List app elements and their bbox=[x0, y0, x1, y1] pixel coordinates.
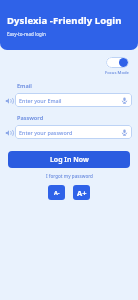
button[interactable]: Voice input for Email bbox=[120, 96, 128, 104]
button[interactable]: Read Password aloud bbox=[3, 127, 14, 138]
button[interactable]: I forgot my password bbox=[0, 173, 138, 179]
staticText: I forgot my password bbox=[46, 173, 93, 179]
button[interactable]: Decrease text size bbox=[48, 185, 65, 200]
button[interactable]: Enter your password bbox=[15, 125, 132, 139]
staticText: Email bbox=[17, 82, 32, 90]
staticText: Password bbox=[17, 114, 44, 122]
button[interactable]: Increase text size bbox=[73, 185, 90, 200]
button[interactable]: Log In Now bbox=[8, 151, 130, 168]
button[interactable]: Enter your Email bbox=[15, 93, 132, 107]
staticText: Enter your password bbox=[19, 129, 73, 136]
button[interactable]: Focus Mode toggle bbox=[104, 56, 130, 77]
staticText: Log In Now bbox=[50, 155, 89, 165]
button[interactable]: Read Email aloud bbox=[3, 95, 14, 106]
staticText: Easy-to-read login bbox=[7, 31, 46, 37]
staticText: A+ bbox=[77, 188, 87, 198]
staticText: Focus Mode bbox=[105, 70, 129, 76]
staticText: Enter your Email bbox=[19, 97, 62, 104]
staticText: A- bbox=[54, 189, 60, 196]
staticText: Dyslexia -Friendly Login bbox=[7, 14, 122, 27]
button[interactable]: Voice input for Password bbox=[120, 128, 128, 136]
